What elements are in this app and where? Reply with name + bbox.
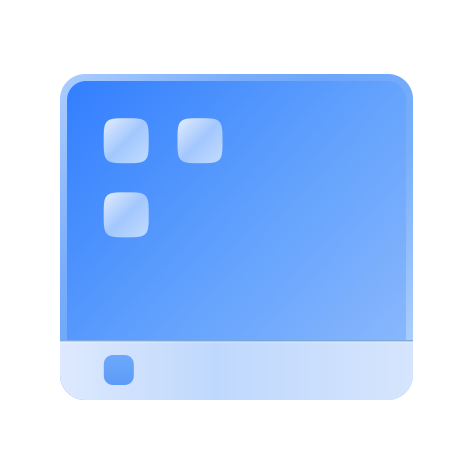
button[interactable]: App window (60, 74, 413, 400)
